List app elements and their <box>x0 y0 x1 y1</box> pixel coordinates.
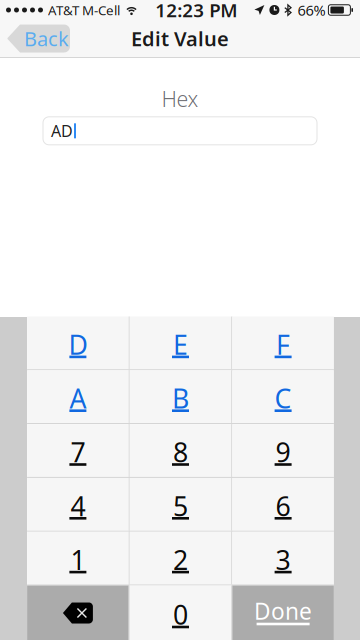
button[interactable]: 6 <box>232 478 334 531</box>
button[interactable]: 5 <box>130 478 231 531</box>
staticText: E <box>173 327 188 362</box>
staticText: Edit Value <box>131 25 229 52</box>
staticText: AT&T M-Cell <box>48 1 120 19</box>
staticText: 7 <box>70 434 85 470</box>
staticText: Done <box>254 596 312 626</box>
staticText: 4 <box>70 488 85 523</box>
staticText: 9 <box>276 434 291 470</box>
button[interactable]: Back <box>7 24 70 52</box>
staticText: F <box>276 327 290 362</box>
button[interactable]: 9 <box>232 424 334 477</box>
staticText: D <box>68 327 87 362</box>
button[interactable]: Delete <box>27 585 129 640</box>
button[interactable]: 3 <box>232 532 334 584</box>
button[interactable]: D <box>27 316 129 369</box>
staticText: AD <box>51 120 73 141</box>
staticText: B <box>172 380 189 416</box>
button[interactable]: Done <box>232 585 334 640</box>
button[interactable]: B <box>130 370 231 423</box>
button[interactable]: A <box>27 370 129 423</box>
staticText: 12:23 PM <box>155 0 237 22</box>
button[interactable]: 1 <box>27 532 129 584</box>
button[interactable]: E <box>130 316 231 369</box>
staticText: C <box>275 380 292 416</box>
staticText: 1 <box>70 542 85 577</box>
staticText: 5 <box>173 488 188 523</box>
staticText: Hex <box>161 84 198 113</box>
button[interactable]: 2 <box>130 532 231 584</box>
button[interactable]: 0 <box>130 585 231 640</box>
staticText: Back <box>24 25 69 52</box>
staticText: 0 <box>173 597 188 632</box>
staticText: 3 <box>276 542 291 577</box>
staticText: 6 <box>276 488 291 523</box>
staticText: 66% <box>297 0 325 20</box>
button[interactable]: C <box>232 370 334 423</box>
staticText: A <box>69 380 86 416</box>
button[interactable]: 8 <box>130 424 231 477</box>
button[interactable]: 7 <box>27 424 129 477</box>
button[interactable]: F <box>232 316 334 369</box>
button[interactable]: 4 <box>27 478 129 531</box>
staticText: 8 <box>173 434 188 470</box>
staticText: 2 <box>173 542 188 577</box>
